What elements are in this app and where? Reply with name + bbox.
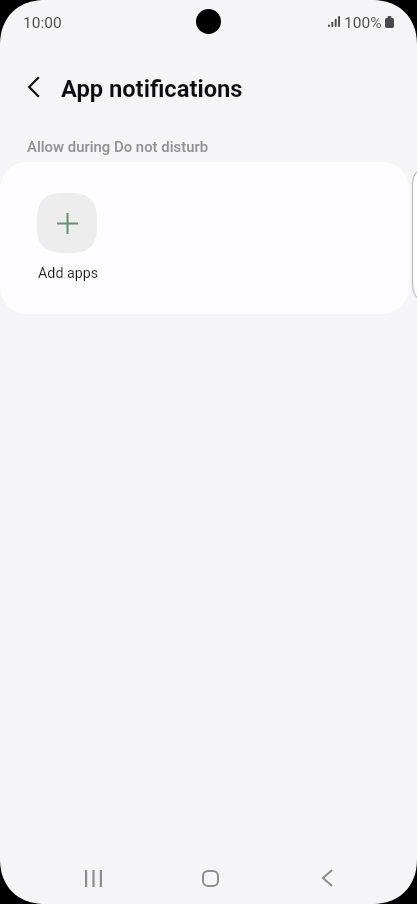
staticText: 100% (344, 14, 382, 32)
staticText: Add apps (38, 265, 99, 282)
button[interactable]: Home (180, 855, 240, 901)
staticText: App notifications (61, 75, 243, 103)
staticText: Allow during Do not disturb (27, 138, 209, 155)
staticText: 10:00 (23, 14, 62, 32)
button[interactable]: Recent apps (63, 855, 123, 901)
button[interactable]: Back (297, 855, 357, 901)
button[interactable]: Add apps (30, 187, 91, 264)
button[interactable]: Navigate up (18, 71, 50, 103)
